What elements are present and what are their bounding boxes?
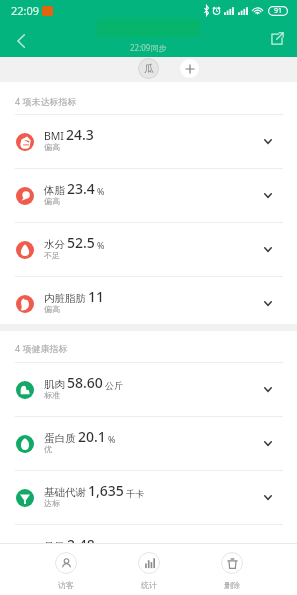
button[interactable]: 访客 xyxy=(48,544,83,590)
staticText: 肌肉 xyxy=(44,378,65,391)
staticText: 标准 xyxy=(44,390,60,400)
staticText: 58.60 xyxy=(67,373,103,392)
button[interactable]: 体脂 xyxy=(0,169,297,223)
button[interactable]: 骨量 xyxy=(0,525,297,579)
button[interactable]: Back xyxy=(6,26,36,56)
button[interactable]: 统计 xyxy=(131,544,166,590)
staticText: 不足 xyxy=(44,250,60,260)
button[interactable]: 瓜 xyxy=(138,58,159,79)
staticText: 4 项健康指标 xyxy=(15,342,68,354)
staticText: 20.1 xyxy=(78,427,106,446)
button[interactable]: 蛋白质 xyxy=(0,417,297,471)
staticText: 访客 xyxy=(58,580,74,590)
staticText: 偏高 xyxy=(44,304,60,314)
staticText: 瓜 xyxy=(144,62,154,75)
staticText: BMI xyxy=(44,129,64,143)
staticText: 2.48 xyxy=(67,535,95,554)
button[interactable]: 水分 xyxy=(0,223,297,277)
staticText: 22:09 xyxy=(11,3,40,18)
staticText: 统计 xyxy=(141,580,157,590)
staticText: 公斤 xyxy=(97,542,115,553)
button[interactable]: 肌肉 xyxy=(0,363,297,417)
staticText: 22:09同步 xyxy=(130,42,167,53)
staticText: 内脏脂肪 xyxy=(44,292,86,305)
button[interactable]: 内脏脂肪 xyxy=(0,277,297,324)
staticText: % xyxy=(97,185,105,197)
staticText: 91 xyxy=(274,6,283,16)
staticText: 删除 xyxy=(224,580,240,590)
button[interactable]: Add user xyxy=(180,59,199,78)
staticText: 达标 xyxy=(44,498,60,508)
staticText: % xyxy=(108,433,116,445)
button[interactable]: BMI xyxy=(0,115,297,169)
staticText: 1,635 xyxy=(88,481,124,500)
staticText: 骨量 xyxy=(44,540,65,553)
staticText: 偏高 xyxy=(44,142,60,152)
staticText: 体脂 xyxy=(44,184,65,197)
staticText: 千卡 xyxy=(126,488,144,499)
staticText: 11 xyxy=(88,287,105,306)
staticText: 水分 xyxy=(44,238,65,251)
staticText: 24.3 xyxy=(66,125,94,144)
staticText: 23.4 xyxy=(67,179,95,198)
staticText: 蛋白质 xyxy=(44,432,76,445)
staticText: 优 xyxy=(44,444,52,454)
staticText: 偏高 xyxy=(44,196,60,206)
staticText: 基础代谢 xyxy=(44,486,86,499)
button[interactable]: 基础代谢 xyxy=(0,471,297,525)
staticText: 公斤 xyxy=(105,380,123,391)
button[interactable]: 删除 xyxy=(214,544,249,590)
staticText: % xyxy=(97,239,105,251)
button[interactable]: Share xyxy=(263,25,291,53)
staticText: 标准 xyxy=(44,552,60,562)
staticText: 52.5 xyxy=(67,233,95,252)
staticText: 4 项未达标指标 xyxy=(15,95,77,107)
